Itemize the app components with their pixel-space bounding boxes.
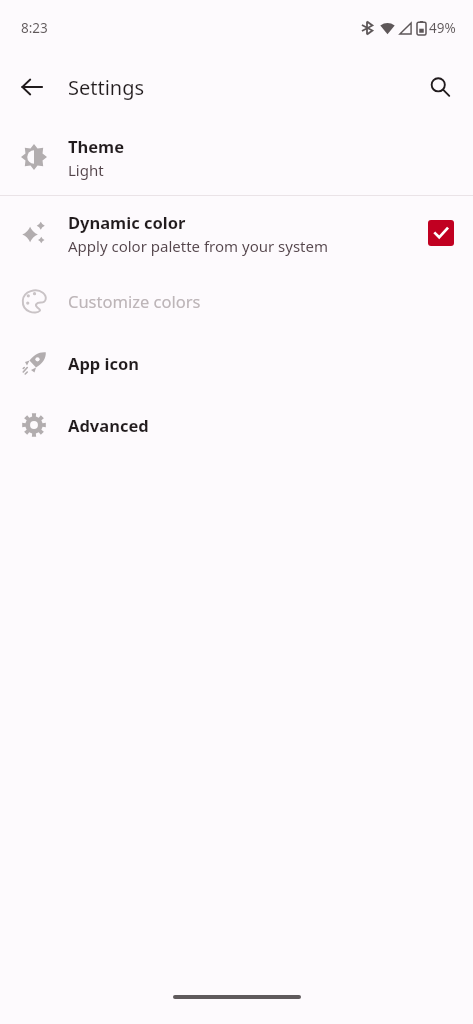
staticText: 49% <box>429 19 456 37</box>
button[interactable]: Back <box>8 63 56 111</box>
button[interactable]: Search <box>416 63 464 111</box>
staticText: Light <box>68 160 104 180</box>
button[interactable]: Dynamic color <box>0 196 473 270</box>
staticText: Theme <box>68 135 125 157</box>
staticText: 8:23 <box>21 19 48 37</box>
staticText: Advanced <box>68 414 149 436</box>
staticText: App icon <box>68 352 140 374</box>
button[interactable]: Customize colors <box>0 270 473 332</box>
button[interactable]: App icon <box>0 332 473 394</box>
button[interactable]: Dynamic color enabled <box>428 220 454 246</box>
button[interactable]: Theme <box>0 119 473 195</box>
staticText: Settings <box>68 74 145 101</box>
staticText: Customize colors <box>68 290 201 312</box>
staticText: Dynamic color <box>68 211 186 233</box>
button[interactable]: Advanced <box>0 394 473 456</box>
staticText: Apply color palette from your system <box>68 236 328 256</box>
